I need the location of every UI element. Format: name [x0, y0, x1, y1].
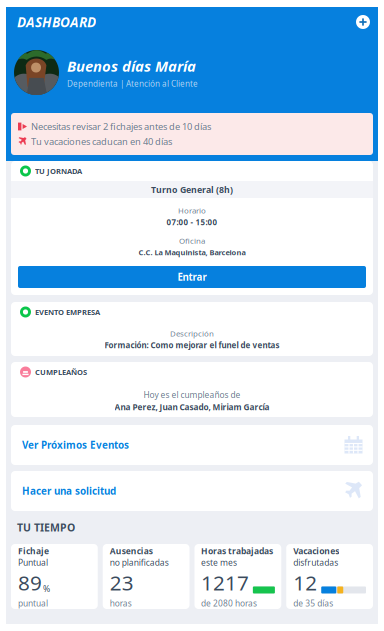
staticText: de 35 días [293, 597, 333, 609]
staticText: horas [110, 597, 132, 609]
staticText: Ausencias [110, 545, 153, 557]
staticText: EVENTO EMPRESA [35, 307, 100, 317]
staticText: Entrar [177, 270, 206, 284]
staticText: Hacer una solicitud [22, 484, 116, 498]
staticText: Tu vacaciones caducan en 40 días [31, 135, 172, 148]
staticText: Fichaje [18, 545, 49, 557]
staticText: puntual [18, 597, 48, 609]
staticText: no planificadas [110, 557, 169, 568]
button[interactable]: Nuevo [353, 12, 373, 32]
staticText: Oficina [179, 235, 205, 246]
staticText: Formación: Como mejorar el funel de vent… [104, 340, 279, 351]
staticText: Vacaciones [293, 545, 339, 557]
staticText: Turno General (8h) [151, 183, 233, 195]
staticText: 07:00 - 15:00 [166, 217, 217, 227]
staticText: CUMPLEAÑOS [35, 367, 87, 377]
staticText: 89 [18, 568, 42, 596]
staticText: Hoy es el cumpleaños de [143, 389, 240, 400]
staticText: TU TIEMPO [17, 520, 75, 535]
staticText: disfrutadas [293, 557, 338, 568]
staticText: 23 [110, 568, 134, 596]
staticText: Horario [178, 205, 206, 216]
staticText: este mes [201, 557, 237, 568]
staticText: Dependienta | Atención al Cliente [67, 78, 198, 89]
staticText: C.C. La Maquinista, Barcelona [138, 247, 245, 257]
staticText: Puntual [18, 557, 48, 568]
button[interactable]: Entrar [18, 266, 366, 288]
staticText: Necesitas revisar 2 fichajes antes de 10… [31, 120, 211, 133]
staticText: TU JORNADA [35, 166, 82, 176]
button[interactable]: Ver Próximos Eventos [11, 425, 373, 465]
staticText: Ana Perez, Juan Casado, Miriam García [114, 401, 269, 413]
staticText: Horas trabajadas [201, 545, 273, 557]
staticText: 12 [293, 568, 317, 596]
staticText: Buenos días María [67, 56, 196, 76]
button[interactable]: Hacer una solicitud [11, 471, 373, 511]
staticText: Descripción [170, 328, 214, 339]
staticText: de 2080 horas [201, 597, 257, 609]
staticText: DASHBOARD [17, 13, 96, 31]
staticText: Ver Próximos Eventos [22, 438, 129, 452]
staticText: 1217 [201, 568, 249, 596]
staticText: % [43, 583, 50, 594]
